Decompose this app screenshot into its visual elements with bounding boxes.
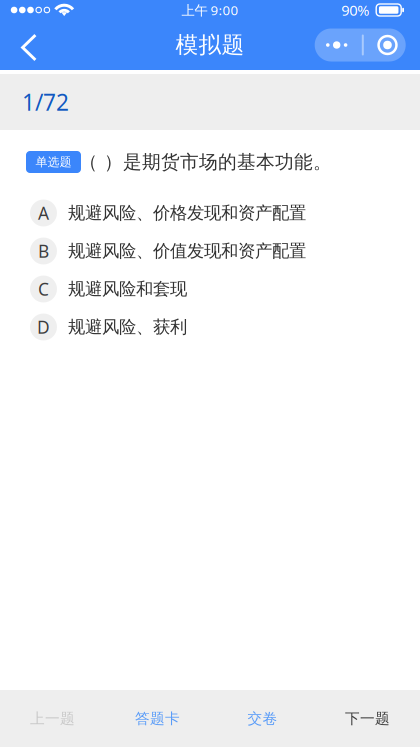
button[interactable]: 下一题 bbox=[315, 690, 420, 747]
staticText: C bbox=[38, 277, 49, 300]
staticText: 90% bbox=[341, 0, 369, 20]
staticText: 交卷 bbox=[247, 709, 277, 727]
staticText: 答题卡 bbox=[135, 709, 180, 727]
button[interactable]: 交卷 bbox=[210, 690, 315, 747]
button[interactable]: C bbox=[0, 270, 420, 308]
staticText: 上午 9:00 bbox=[181, 1, 238, 19]
staticText: A bbox=[38, 201, 49, 224]
staticText: 模拟题 bbox=[175, 31, 244, 59]
button[interactable]: A bbox=[0, 194, 420, 232]
staticText: 规避风险和套现 bbox=[68, 278, 187, 300]
staticText: （ ）是期货市场的基本功能。 bbox=[79, 150, 332, 173]
button[interactable]: B bbox=[0, 232, 420, 270]
button[interactable]: 上一题 bbox=[0, 690, 105, 747]
button[interactable]: 返回 bbox=[7, 20, 51, 70]
staticText: 规避风险、价格发现和资产配置 bbox=[68, 202, 306, 224]
staticText: 规避风险、价值发现和资产配置 bbox=[68, 240, 306, 262]
button[interactable]: 更多 bbox=[315, 28, 406, 61]
staticText: 1/72 bbox=[22, 87, 69, 117]
staticText: 下一题 bbox=[345, 709, 390, 727]
staticText: 规避风险、获利 bbox=[68, 316, 187, 338]
button[interactable]: 答题卡 bbox=[105, 690, 210, 747]
staticText: 上一题 bbox=[30, 709, 75, 727]
button[interactable]: D bbox=[0, 308, 420, 346]
staticText: D bbox=[37, 315, 50, 338]
staticText: 单选题 bbox=[35, 155, 71, 169]
staticText: B bbox=[38, 239, 49, 262]
